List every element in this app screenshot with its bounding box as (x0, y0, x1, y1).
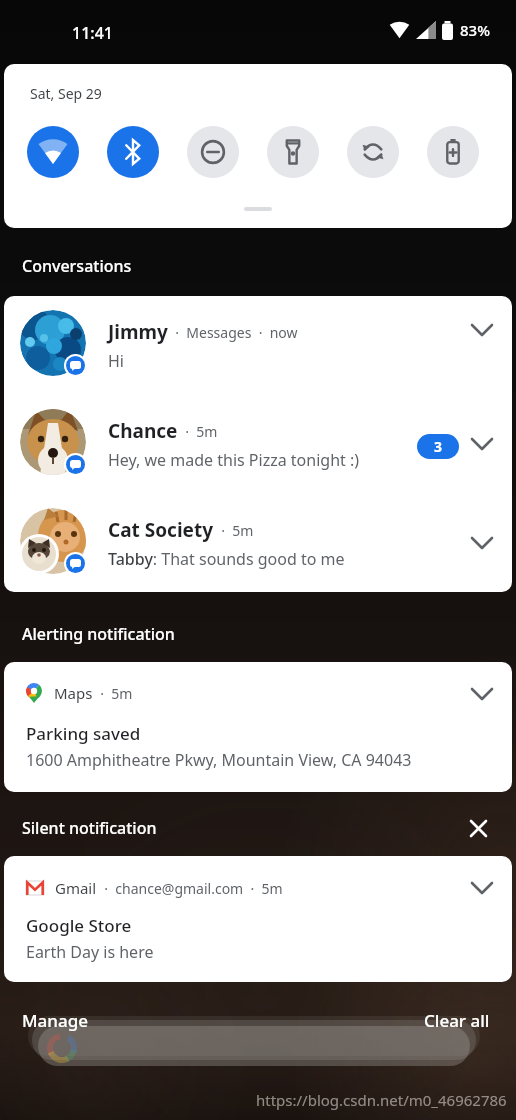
staticText: Conversations (22, 255, 132, 277)
button[interactable]: Manage (22, 1009, 89, 1032)
staticText: 3 (434, 437, 443, 456)
staticText: Parking saved (26, 722, 141, 745)
staticText: 1600 Amphitheatre Pkwy, Mountain View, C… (26, 749, 412, 771)
staticText: Jimmy (108, 319, 168, 345)
staticText: · 5m (214, 521, 254, 540)
staticText: Clear all (424, 1009, 490, 1032)
staticText: Cat Society (108, 517, 214, 543)
staticText: 11:41 (72, 22, 113, 44)
button[interactable]: Clear all (424, 1009, 490, 1032)
staticText: · 5m (178, 422, 218, 441)
button[interactable]: Gmail (4, 856, 512, 982)
staticText: https://blog.csdn.net/m0_46962786 (256, 1090, 507, 1110)
button[interactable] (267, 126, 319, 178)
staticText: · 5m (93, 684, 133, 703)
staticText: Alerting notification (22, 623, 175, 645)
staticText: Earth Day is here (26, 941, 154, 963)
staticText: Gmail (55, 878, 97, 898)
staticText: Sat, Sep 29 (30, 84, 102, 103)
staticText: Google Store (26, 914, 132, 937)
staticText: Hey, we made this Pizza tonight :) (108, 449, 360, 471)
button[interactable] (427, 126, 479, 178)
button[interactable] (347, 126, 399, 178)
staticText: Tabby: That sounds good to me (108, 548, 345, 570)
button[interactable]: Maps (4, 662, 512, 792)
button[interactable] (107, 126, 159, 178)
staticText: Maps (54, 683, 93, 703)
button[interactable] (464, 814, 492, 842)
button[interactable] (27, 126, 79, 178)
staticText: Silent notification (22, 817, 157, 839)
staticText: · chance@gmail.com · 5m (97, 879, 283, 898)
staticText: Hi (108, 350, 124, 372)
button[interactable]: Jimmy (4, 296, 512, 394)
button[interactable]: Cat Society (4, 494, 512, 592)
button[interactable] (187, 126, 239, 178)
staticText: 83% (460, 20, 490, 40)
staticText: Manage (22, 1009, 89, 1032)
staticText: Chance (108, 418, 178, 444)
button[interactable]: Chance (4, 395, 512, 493)
staticText: · Messages · now (168, 323, 298, 342)
